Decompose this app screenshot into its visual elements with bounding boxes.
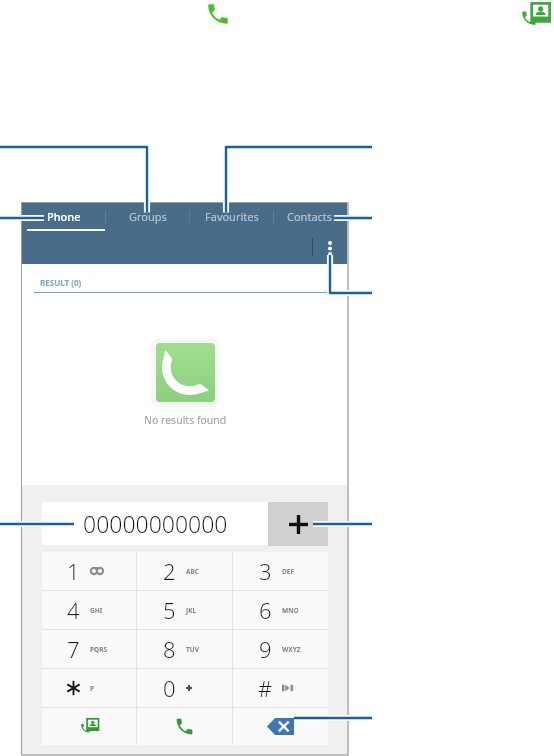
staticText: No results found [144,413,227,427]
staticText: 6 [259,595,272,625]
button[interactable]: 7 [42,630,136,668]
button[interactable]: Add to contacts [42,708,136,745]
staticText: PQRS [90,645,108,654]
button[interactable]: 0 [137,669,232,707]
staticText: Favourites [205,209,259,224]
staticText: 5 [163,595,176,625]
button[interactable]: Groups [106,203,189,230]
button[interactable]: 00000000000 [42,502,268,545]
staticText: # [258,673,273,703]
staticText: WXYZ [282,645,301,654]
staticText: MNO [282,606,299,615]
staticText: 3 [259,556,272,586]
staticText: 2 [163,556,176,586]
staticText: 4 [67,595,80,625]
staticText: 7 [67,634,80,664]
button[interactable]: Contacts [519,0,552,32]
button[interactable]: 4 [42,591,136,629]
staticText: 9 [259,634,272,664]
button[interactable]: 9 [233,630,328,668]
button[interactable]: 8 [137,630,232,668]
staticText: 8 [163,634,176,664]
staticText: DEF [282,567,294,576]
button[interactable]: 2 [137,552,232,590]
button[interactable]: Favourites [190,203,273,230]
staticText: P [90,684,95,693]
button[interactable]: # [233,669,328,707]
staticText: ABC [186,567,199,576]
button[interactable]: 6 [233,591,328,629]
staticText: 0 [163,673,176,703]
button[interactable]: Contacts [274,203,346,230]
staticText: RESULT (0) [40,277,82,288]
staticText: GHI [90,606,103,615]
staticText: 1 [67,556,80,586]
button[interactable]: Call [137,708,232,745]
button[interactable]: Call [205,1,231,27]
button[interactable]: Add plus [268,502,328,546]
button[interactable]: 3 [233,552,328,590]
button[interactable]: Phone [22,203,105,230]
staticText: Phone [47,209,81,224]
button[interactable]: 1 [42,552,136,590]
button[interactable]: P [42,669,136,707]
staticText: JKL [186,606,197,615]
button[interactable]: More options [319,237,341,259]
button[interactable]: Backspace [233,708,328,745]
button[interactable]: 5 [137,591,232,629]
staticText: Contacts [287,209,333,224]
staticText: 00000000000 [83,508,228,539]
staticText: TUV [186,645,199,654]
staticText: Groups [129,209,167,224]
